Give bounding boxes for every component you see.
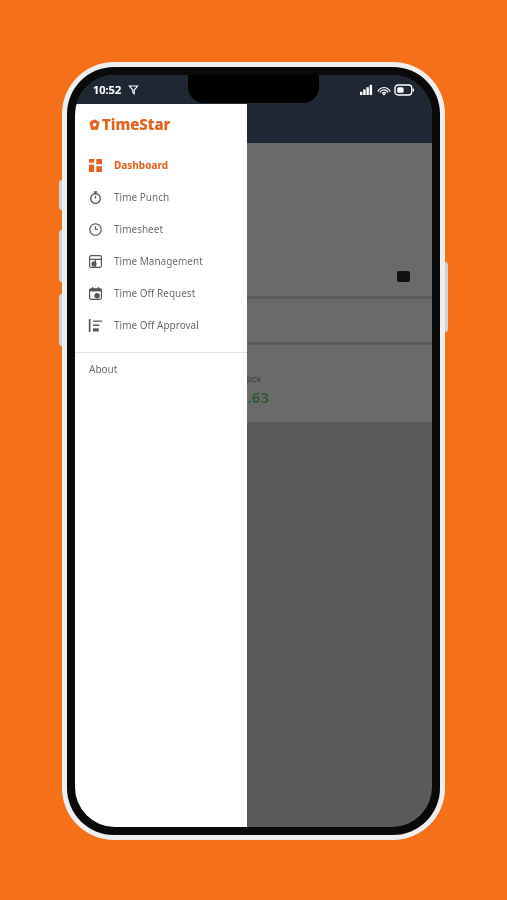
button[interactable]: Time Off Approval (75, 309, 247, 341)
staticText: Dashboard (114, 158, 168, 172)
staticText: Time Off Approval (114, 318, 199, 332)
button[interactable]: Time Management (75, 245, 247, 277)
staticText: Timesheet (114, 222, 163, 236)
staticText: September 20, 2022 (91, 213, 167, 224)
staticText: 10:52 (93, 82, 122, 97)
staticText: Time Punch (114, 190, 170, 204)
button[interactable]: About (75, 353, 247, 384)
staticText: 1:04 (91, 175, 141, 209)
button[interactable]: Timesheet (75, 213, 247, 245)
staticText: TimeStar (102, 114, 171, 134)
staticText: About (89, 362, 118, 376)
staticText: No pending requests. (91, 324, 183, 336)
staticText: PM (141, 197, 156, 209)
staticText: TIME CLOCK (91, 155, 152, 169)
staticText: 0.63 (239, 387, 269, 407)
staticText: Time Management (114, 254, 203, 268)
staticText: ACCRUAL BALANCE (91, 353, 186, 367)
button[interactable]: Dashboard (75, 149, 247, 181)
staticText: SICK (246, 375, 261, 385)
button[interactable]: Time Off Request (75, 277, 247, 309)
button[interactable]: Time Punch (75, 181, 247, 213)
staticText: Time Off Request (114, 286, 196, 300)
